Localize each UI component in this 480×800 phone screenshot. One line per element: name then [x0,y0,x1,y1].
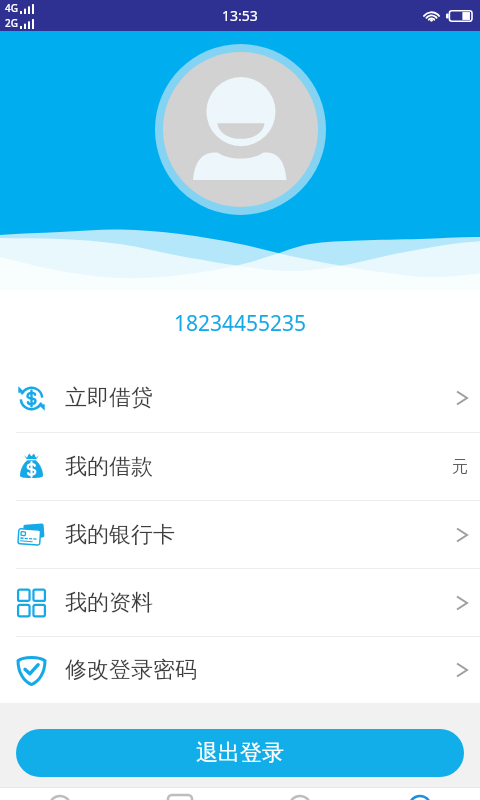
button[interactable]: Profile [360,788,480,800]
button[interactable]: Home [0,788,120,800]
staticText: 4G [5,1,18,15]
staticText: 我的资料 [65,589,153,617]
button[interactable]: 退出登录 [16,729,464,777]
staticText: 退出登录 [196,739,284,767]
staticText: 13:53 [222,6,258,25]
button[interactable]: 立即借贷 [0,364,480,432]
staticText: 元 [452,457,468,477]
staticText: 我的银行卡 [65,521,175,549]
button[interactable]: 我的银行卡 [0,501,480,568]
staticText: 立即借贷 [65,384,153,412]
button[interactable]: 我的借款 [0,433,480,500]
button[interactable]: Messages [240,788,360,800]
button[interactable]: 我的资料 [0,569,480,636]
staticText: 我的借款 [65,453,153,481]
button[interactable]: Orders [120,788,240,800]
button[interactable]: 修改登录密码 [0,637,480,703]
staticText: 2G [5,16,18,30]
staticText: 修改登录密码 [65,656,197,684]
staticText: 18234455235 [174,309,307,338]
